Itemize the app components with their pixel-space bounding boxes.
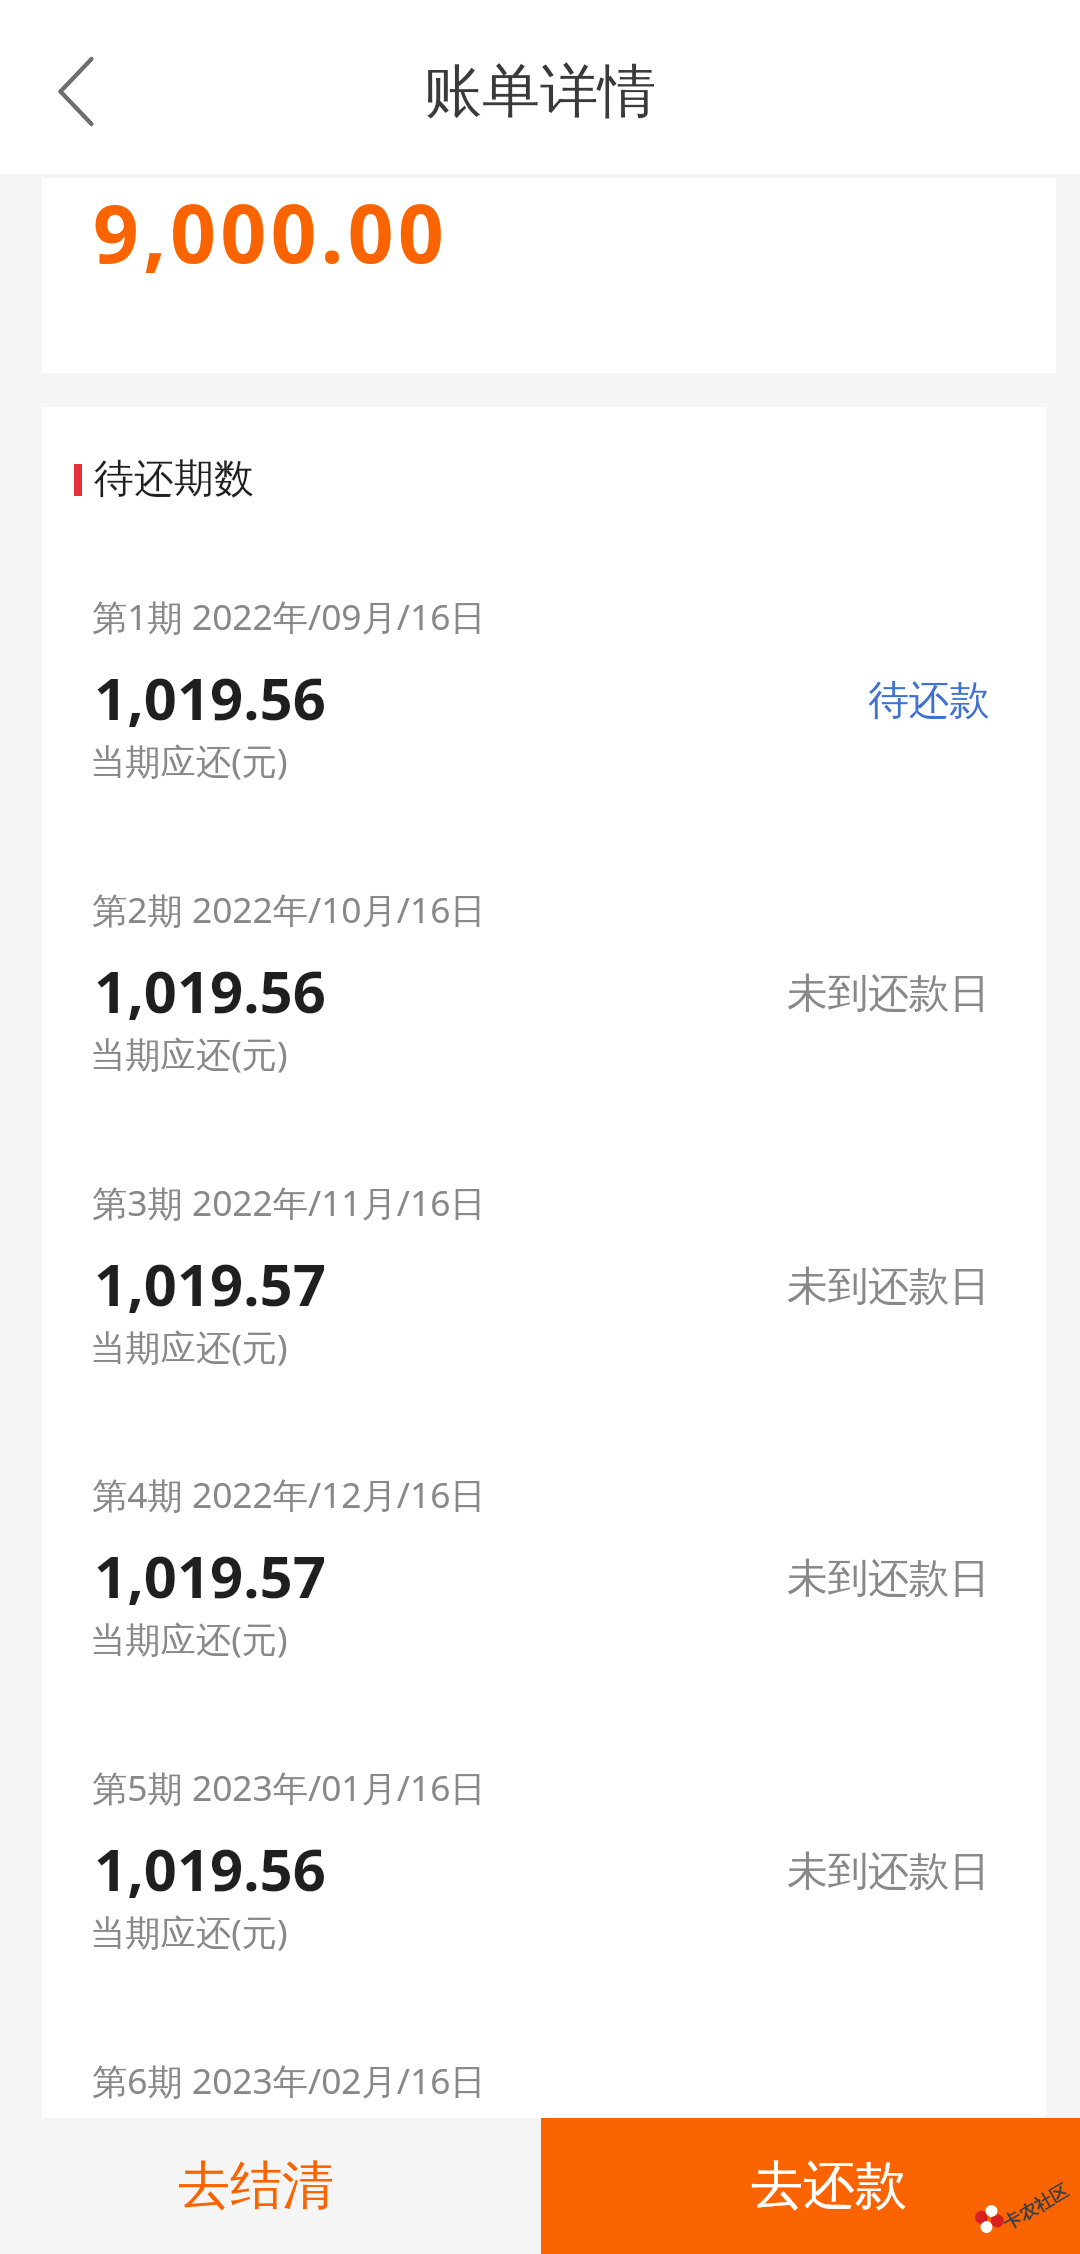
staticText: 未到还款日 [787, 968, 990, 1019]
button[interactable]: 第6期 2023年/02月/16日 [42, 2041, 1046, 2118]
staticText: 第2期 2022年/10月/16日 [92, 885, 486, 933]
staticText: 待还期数 [94, 453, 254, 503]
button[interactable]: 第5期 2023年/01月/16日 [42, 1748, 1046, 2041]
staticText: 未到还款日 [787, 1553, 990, 1604]
staticText: 1,019.57 [94, 1244, 326, 1323]
staticText: 未到还款日 [787, 1846, 990, 1897]
staticText: 第4期 2022年/12月/16日 [92, 1470, 486, 1518]
staticText: 去结清 [178, 2153, 334, 2219]
button[interactable]: 第1期 2022年/09月/16日 [42, 577, 1046, 870]
staticText: 待还款 [868, 675, 990, 726]
staticText: 当期应还(元) [90, 736, 288, 784]
staticText: 1,019.56 [94, 1829, 326, 1908]
staticText: 当期应还(元) [90, 1322, 288, 1370]
button[interactable]: 第4期 2022年/12月/16日 [42, 1455, 1046, 1748]
staticText: 9,000.00 [93, 177, 449, 286]
staticText: 当期应还(元) [90, 1029, 288, 1077]
staticText: 账单详情 [424, 55, 656, 128]
button[interactable]: 第3期 2022年/11月/16日 [42, 1163, 1046, 1456]
staticText: 第1期 2022年/09月/16日 [92, 592, 486, 640]
staticText: 当期应还(元) [90, 1614, 288, 1662]
staticText: 第5期 2023年/01月/16日 [92, 1763, 486, 1811]
staticText: 1,019.56 [94, 658, 326, 737]
staticText: 第6期 2023年/02月/16日 [92, 2056, 486, 2104]
staticText: 去还款 [751, 2153, 907, 2219]
staticText: 1,019.56 [94, 951, 326, 1030]
button[interactable]: 去结清 [0, 2118, 541, 2254]
staticText: 未到还款日 [787, 1261, 990, 1312]
button[interactable]: 第2期 2022年/10月/16日 [42, 870, 1046, 1163]
staticText: 1,019.57 [94, 1536, 326, 1615]
staticText: 当期应还(元) [90, 1907, 288, 1955]
button[interactable]: Back [22, 32, 132, 142]
staticText: 第3期 2022年/11月/16日 [92, 1178, 486, 1226]
button[interactable]: 去还款 [541, 2118, 1080, 2254]
staticText: 卡农社区 [999, 2179, 1073, 2235]
